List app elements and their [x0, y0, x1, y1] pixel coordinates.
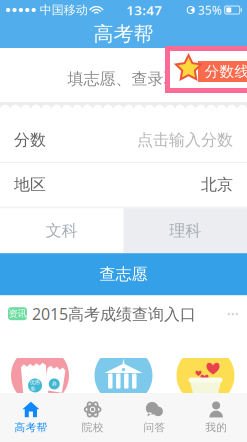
staticText: 13:47: [126, 1, 162, 19]
button[interactable]: 分数线: [165, 46, 247, 93]
staticText: 北京: [201, 175, 233, 195]
staticText: 高考帮: [14, 421, 47, 434]
staticText: 分数: [14, 130, 46, 150]
staticText: 填志愿、查录取: [67, 69, 179, 89]
button[interactable]: 高考帮: [0, 393, 62, 442]
staticText: 问答: [143, 421, 165, 434]
button[interactable]: 我的: [185, 393, 247, 442]
staticText: 券: [52, 381, 57, 387]
staticText: 分数线: [204, 62, 247, 80]
staticText: 查志愿: [99, 264, 147, 284]
staticText: •••: [227, 307, 239, 320]
staticText: 2015高考成绩查询入口: [32, 303, 196, 324]
staticText: 文科: [46, 221, 78, 241]
staticText: 中国移动: [40, 3, 88, 17]
staticText: 资讯: [8, 308, 26, 319]
staticText: 高考帮: [93, 22, 153, 46]
button[interactable]: 问答: [123, 393, 185, 442]
staticText: 优惠券: [29, 379, 39, 392]
staticText: 我的: [205, 421, 227, 434]
staticText: 35%: [198, 2, 222, 18]
staticText: 院校: [82, 421, 104, 434]
staticText: 点击输入分数: [137, 130, 233, 150]
staticText: 理科: [169, 221, 201, 241]
staticText: 地区: [14, 175, 46, 195]
button[interactable]: 院校: [62, 393, 124, 442]
